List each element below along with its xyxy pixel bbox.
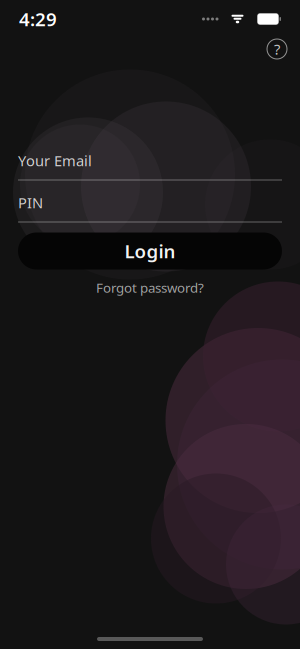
staticText: ? (274, 39, 280, 59)
staticText: 4:29 (19, 7, 57, 31)
staticText: Your Email (18, 151, 92, 170)
button[interactable]: Forgot password? (18, 279, 282, 295)
staticText: Forgot password? (96, 279, 204, 296)
staticText: PIN (18, 193, 43, 212)
button[interactable]: PIN (18, 194, 282, 222)
button[interactable]: Your Email (18, 152, 282, 180)
button[interactable]: Login (18, 232, 282, 269)
staticText: Login (124, 239, 175, 263)
button[interactable]: Help (267, 39, 287, 59)
